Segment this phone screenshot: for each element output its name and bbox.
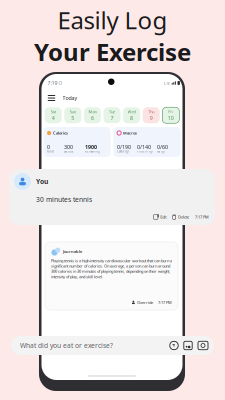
staticText: Macros: [123, 130, 137, 136]
button[interactable]: Edit: [153, 214, 166, 220]
button[interactable]: Delete: [166, 214, 189, 220]
button[interactable]: Thu: [143, 107, 160, 123]
button[interactable]: What did you eat or exercise?: [11, 336, 141, 355]
staticText: 1900: [85, 143, 97, 151]
staticText: You: [36, 177, 48, 186]
staticText: Edit: [160, 214, 166, 220]
staticText: 10: [168, 114, 174, 121]
staticText: Journable: [63, 249, 82, 254]
staticText: Sat: [51, 109, 56, 114]
staticText: 7:19: [47, 79, 57, 87]
button[interactable]: Sat: [45, 107, 62, 123]
button[interactable]: Camera: [195, 336, 211, 355]
button[interactable]: Photos: [181, 336, 195, 355]
staticText: 8: [130, 114, 133, 121]
staticText: Thu: [148, 109, 154, 114]
staticText: Sun: [70, 109, 76, 114]
staticText: Today: [62, 94, 77, 102]
staticText: 7:17 PM: [195, 214, 209, 220]
staticText: Remaining: [85, 150, 100, 153]
staticText: 0/190: [117, 143, 131, 151]
button[interactable]: Sun: [64, 107, 81, 123]
button[interactable]: Wed: [123, 107, 140, 123]
staticText: Wed: [128, 109, 136, 114]
button[interactable]: History: [167, 336, 181, 355]
staticText: 7: [110, 114, 113, 121]
staticText: Fri: [168, 109, 173, 114]
staticText: 5: [71, 114, 74, 121]
staticText: Food: [47, 150, 54, 153]
staticText: Calories: [53, 130, 68, 136]
staticText: 6: [91, 114, 94, 121]
staticText: 30 minutes tennis: [36, 195, 92, 204]
staticText: Tue: [109, 109, 115, 114]
staticText: 0/60: [157, 143, 168, 151]
button[interactable]: Mon: [84, 107, 101, 123]
staticText: Override: [137, 300, 153, 305]
staticText: Mon: [88, 109, 96, 114]
staticText: 300: [64, 143, 73, 151]
staticText: 0: [47, 143, 50, 151]
staticText: Easily Log: [57, 4, 167, 36]
staticText: 9: [150, 114, 153, 121]
button[interactable]: Today: [41, 92, 182, 104]
staticText: Fat (g): [157, 150, 165, 153]
staticText: LTE: [164, 80, 170, 86]
staticText: 7:17 PM: [158, 300, 172, 305]
staticText: Protein (g): [137, 150, 153, 153]
staticText: Delete: [178, 214, 189, 220]
staticText: 0/140: [137, 143, 151, 151]
button[interactable]: Fri: [162, 107, 179, 123]
staticText: What did you eat or exercise?: [20, 341, 113, 350]
staticText: 4: [52, 114, 55, 121]
staticText: Carbs (g): [117, 150, 129, 153]
staticText: Exercise: [64, 150, 74, 153]
staticText: Playing tennis is a high-intensity cardi…: [51, 258, 172, 279]
staticText: Your Exercise: [34, 36, 191, 68]
button[interactable]: Tue: [103, 107, 120, 123]
